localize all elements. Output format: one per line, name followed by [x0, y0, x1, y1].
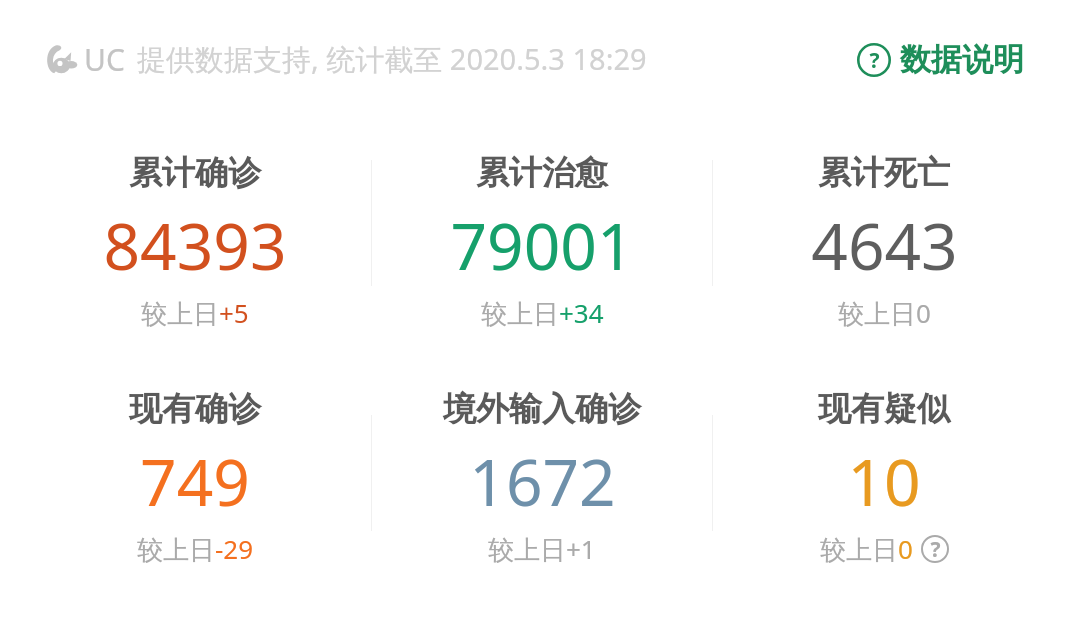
- button[interactable]: 现有疑似: [709, 388, 1059, 567]
- staticText: 较上日+34: [481, 295, 604, 331]
- staticText: 84393: [103, 202, 287, 289]
- staticText: 79001: [450, 202, 634, 289]
- staticText: 累计治愈: [476, 152, 608, 194]
- button[interactable]: 累计确诊: [20, 152, 370, 331]
- button[interactable]: 累计治愈: [367, 152, 717, 331]
- staticText: 较上日-29: [137, 531, 254, 567]
- staticText: 749: [140, 438, 250, 525]
- staticText: 较上日0: [838, 295, 931, 331]
- staticText: 4643: [811, 202, 958, 289]
- other: UC Browser logo: [44, 42, 78, 76]
- button[interactable]: 累计死亡: [709, 152, 1059, 331]
- staticText: 境外输入确诊: [443, 388, 641, 430]
- staticText: UC: [84, 39, 125, 80]
- button[interactable]: 现有确诊: [20, 388, 370, 567]
- staticText: 累计确诊: [129, 152, 261, 194]
- button[interactable]: 境外输入确诊: [367, 388, 717, 567]
- staticText: ?: [930, 535, 941, 563]
- staticText: 现有疑似: [818, 388, 950, 430]
- button[interactable]: ?: [857, 40, 1024, 79]
- staticText: 1672: [469, 438, 616, 525]
- staticText: 数据说明: [900, 40, 1024, 79]
- staticText: 较上日0: [820, 531, 913, 567]
- staticText: 现有确诊: [129, 388, 261, 430]
- staticText: 提供数据支持, 统计截至 2020.5.3 18:29: [137, 39, 647, 79]
- staticText: ?: [869, 46, 880, 75]
- staticText: 10: [847, 438, 921, 525]
- staticText: 较上日+5: [141, 295, 249, 331]
- staticText: 累计死亡: [818, 152, 950, 194]
- staticText: 较上日+1: [488, 531, 596, 567]
- button[interactable]: Help about suspected cases: [921, 535, 949, 563]
